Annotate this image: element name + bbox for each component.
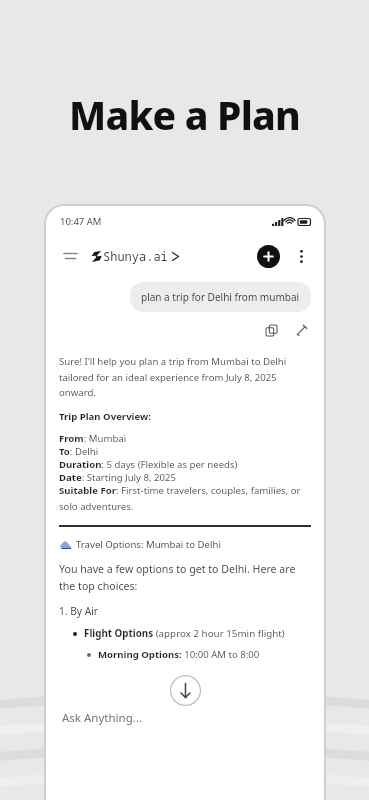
- staticText: Make a Plan: [69, 88, 300, 141]
- staticText: Duration: 5 days (Flexible as per needs): [59, 458, 238, 471]
- staticText: Date: Starting July 8, 2025: [59, 471, 176, 484]
- staticText: Flight Options (approx 2 hour 15min flig…: [84, 627, 285, 640]
- staticText: You have a few options to get to Delhi. …: [59, 562, 311, 593]
- staticText: 10:47 AM: [60, 215, 102, 228]
- staticText: To: Delhi: [59, 445, 99, 458]
- staticText: Ask Anything...: [62, 710, 142, 726]
- button[interactable]: More options: [291, 246, 311, 266]
- button[interactable]: Copy: [262, 321, 281, 340]
- button[interactable]: Shunya.ai: [91, 248, 179, 264]
- staticText: Trip Plan Overview:: [59, 410, 151, 423]
- staticText: 1. By Air: [59, 604, 99, 618]
- staticText: plan a trip for Delhi from mumbai: [141, 290, 300, 304]
- staticText: Suitable For: First-time travelers, coup…: [59, 484, 311, 513]
- staticText: Travel Options: Mumbai to Delhi: [76, 538, 221, 551]
- button[interactable]: Scroll to bottom: [170, 675, 201, 706]
- staticText: Shunya.ai: [103, 248, 168, 264]
- staticText: Sure! I'll help you plan a trip from Mum…: [59, 355, 311, 399]
- staticText: From: Mumbai: [59, 432, 127, 445]
- button[interactable]: Menu: [59, 245, 81, 267]
- button[interactable]: Ask Anything...: [46, 692, 324, 800]
- staticText: Morning Options: 10:00 AM to 8:00: [98, 648, 260, 661]
- button[interactable]: plan a trip for Delhi from mumbai: [130, 282, 311, 312]
- button[interactable]: Edit: [292, 321, 311, 340]
- button[interactable]: New chat: [257, 245, 280, 268]
